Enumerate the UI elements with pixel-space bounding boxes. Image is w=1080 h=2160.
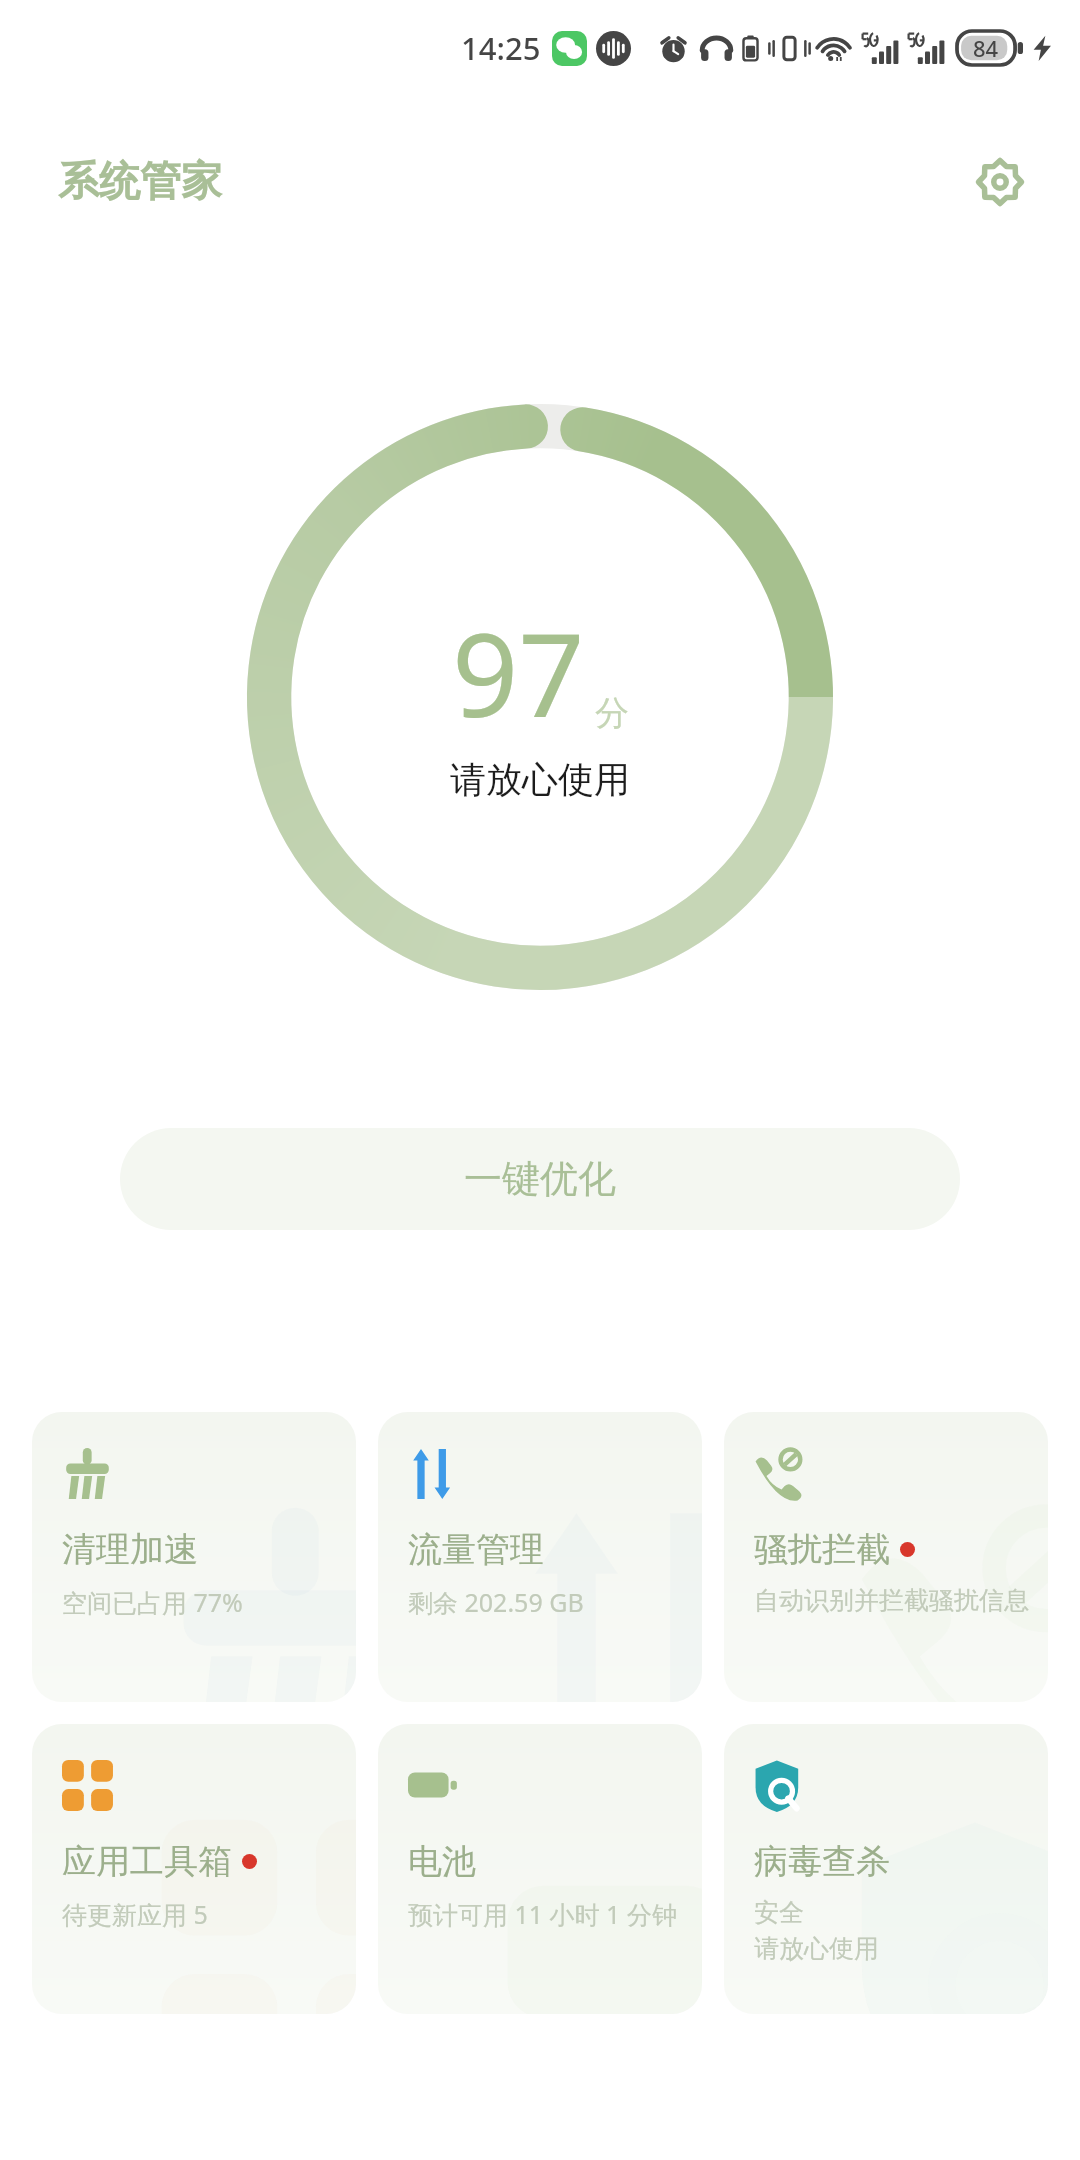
staticText: 自动识别并拦截骚扰信息 <box>754 1585 1029 1616</box>
button[interactable]: 电池 <box>378 1724 702 2014</box>
staticText: 14:25 <box>461 27 541 69</box>
staticText: 流量管理 <box>408 1528 544 1571</box>
staticText: 一键优化 <box>464 1155 616 1203</box>
staticText: 空间已占用 77% <box>62 1585 243 1619</box>
staticText: 预计可用 11 小时 1 分钟 <box>408 1897 677 1931</box>
button[interactable]: 应用工具箱 <box>32 1724 356 2014</box>
button[interactable]: 清理加速 <box>32 1412 356 1702</box>
staticText: 待更新应用 5 <box>62 1897 208 1931</box>
button[interactable]: 骚扰拦截 <box>724 1412 1048 1702</box>
button[interactable]: 病毒查杀 <box>724 1724 1048 2014</box>
staticText: 病毒查杀 <box>754 1840 890 1883</box>
staticText: 安全 请放心使用 <box>754 1897 879 1964</box>
staticText: 应用工具箱 <box>62 1840 232 1883</box>
staticText: 97 <box>452 593 585 751</box>
staticText: 清理加速 <box>62 1528 198 1571</box>
staticText: 电池 <box>408 1840 476 1883</box>
staticText: 请放心使用 <box>450 757 630 802</box>
staticText: 分 <box>595 692 629 735</box>
staticText: 84 <box>973 33 999 63</box>
staticText: 剩余 202.59 GB <box>408 1585 584 1619</box>
button[interactable]: 一键优化 <box>120 1128 960 1230</box>
button[interactable]: 流量管理 <box>378 1412 702 1702</box>
staticText: 系统管家 <box>58 156 222 208</box>
button[interactable]: Settings <box>960 142 1040 222</box>
staticText: 骚扰拦截 <box>754 1528 890 1571</box>
